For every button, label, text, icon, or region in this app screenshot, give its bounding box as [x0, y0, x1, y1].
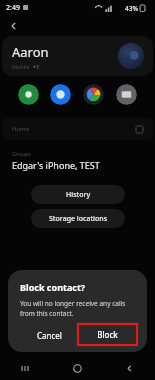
button[interactable]: Storage locations — [31, 209, 125, 228]
staticText: Edgar's iPhone, TEST — [12, 159, 100, 171]
button[interactable]: Recents — [0, 356, 51, 380]
staticText: Home — [12, 125, 30, 133]
staticText: Groups — [12, 150, 31, 157]
staticText: 2:49 — [6, 3, 20, 13]
staticText: Block contact? — [20, 281, 86, 293]
button[interactable]: Home — [51, 356, 103, 380]
staticText: History — [66, 190, 91, 200]
staticText: You will no longer receive any calls fro… — [20, 299, 137, 318]
staticText: Cancel — [37, 330, 62, 341]
button[interactable]: Open map — [133, 123, 145, 135]
staticText: Aaron — [12, 43, 49, 61]
button[interactable]: Cancel — [20, 325, 78, 345]
button[interactable]: Email — [116, 84, 137, 105]
button[interactable]: Block — [78, 324, 137, 345]
button[interactable]: Home — [2, 118, 153, 140]
button[interactable]: Back — [4, 16, 24, 36]
staticText: Storage locations — [49, 214, 108, 224]
button[interactable]: Video call — [83, 84, 104, 105]
button[interactable]: Groups — [2, 148, 153, 173]
button[interactable]: History — [31, 185, 125, 204]
button[interactable]: Call — [18, 84, 39, 105]
button[interactable]: Back — [103, 356, 155, 380]
staticText: +1 — [33, 63, 40, 70]
staticText: Mobile — [12, 63, 30, 70]
button[interactable]: Message — [50, 84, 71, 105]
staticText: 43% — [125, 4, 138, 13]
button[interactable]: Aaron — [2, 36, 153, 76]
staticText: Block — [97, 329, 118, 340]
